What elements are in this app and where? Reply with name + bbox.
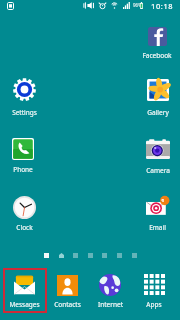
staticText: Facebook: [142, 51, 172, 60]
staticText: Apps: [146, 300, 162, 309]
staticText: Camera: [146, 166, 170, 175]
button[interactable]: [2, 193, 46, 232]
button[interactable]: [2, 75, 46, 117]
button[interactable]: [136, 135, 180, 175]
button[interactable]: [1, 135, 45, 174]
staticText: Phone: [13, 165, 33, 174]
button[interactable]: [2, 271, 46, 309]
staticText: 96%: [133, 2, 142, 8]
staticText: Clock: [16, 223, 33, 232]
button[interactable]: [88, 271, 132, 309]
button[interactable]: [136, 76, 180, 117]
button[interactable]: [132, 271, 176, 309]
staticText: Email: [149, 223, 166, 232]
staticText: Gallery: [147, 108, 169, 117]
button[interactable]: [135, 24, 179, 60]
button[interactable]: 1: [135, 193, 179, 232]
staticText: Settings: [12, 108, 37, 117]
staticText: Internet: [98, 300, 123, 309]
button[interactable]: [45, 272, 89, 309]
staticText: Messages: [9, 300, 40, 309]
staticText: 10:18: [151, 1, 174, 11]
staticText: 1: [161, 197, 165, 202]
staticText: Contacts: [54, 300, 81, 309]
